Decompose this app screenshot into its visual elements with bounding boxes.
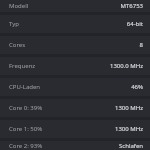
staticText: Modell [9,2,29,10]
button[interactable]: Modell [0,0,150,12]
staticText: Cores [9,41,26,49]
button[interactable]: Typ [0,15,150,33]
staticText: 46% [131,83,143,91]
staticText: Core 0: 39% [9,104,43,112]
button[interactable]: CPU-Laden [0,78,150,96]
staticText: CPU-Laden [9,83,41,91]
staticText: Core 2: 93% [9,142,43,150]
button[interactable]: Core 0: 39% [0,99,150,117]
button[interactable]: Core 2: 93% [0,141,150,150]
button[interactable]: Frequenz [0,57,150,75]
staticText: MT6753 [120,2,143,10]
staticText: Schlafen [119,142,143,150]
staticText: Core 1: 50% [9,125,43,133]
staticText: Typ [9,20,19,28]
button[interactable]: Core 1: 50% [0,120,150,138]
staticText: 1300 MHz [115,125,143,133]
staticText: 1300 MHz [115,104,143,112]
staticText: 8 [139,41,143,49]
button[interactable]: Cores [0,36,150,54]
staticText: 1300.0 MHz [109,62,143,70]
staticText: 64-bit [126,20,143,28]
staticText: Frequenz [9,62,36,70]
